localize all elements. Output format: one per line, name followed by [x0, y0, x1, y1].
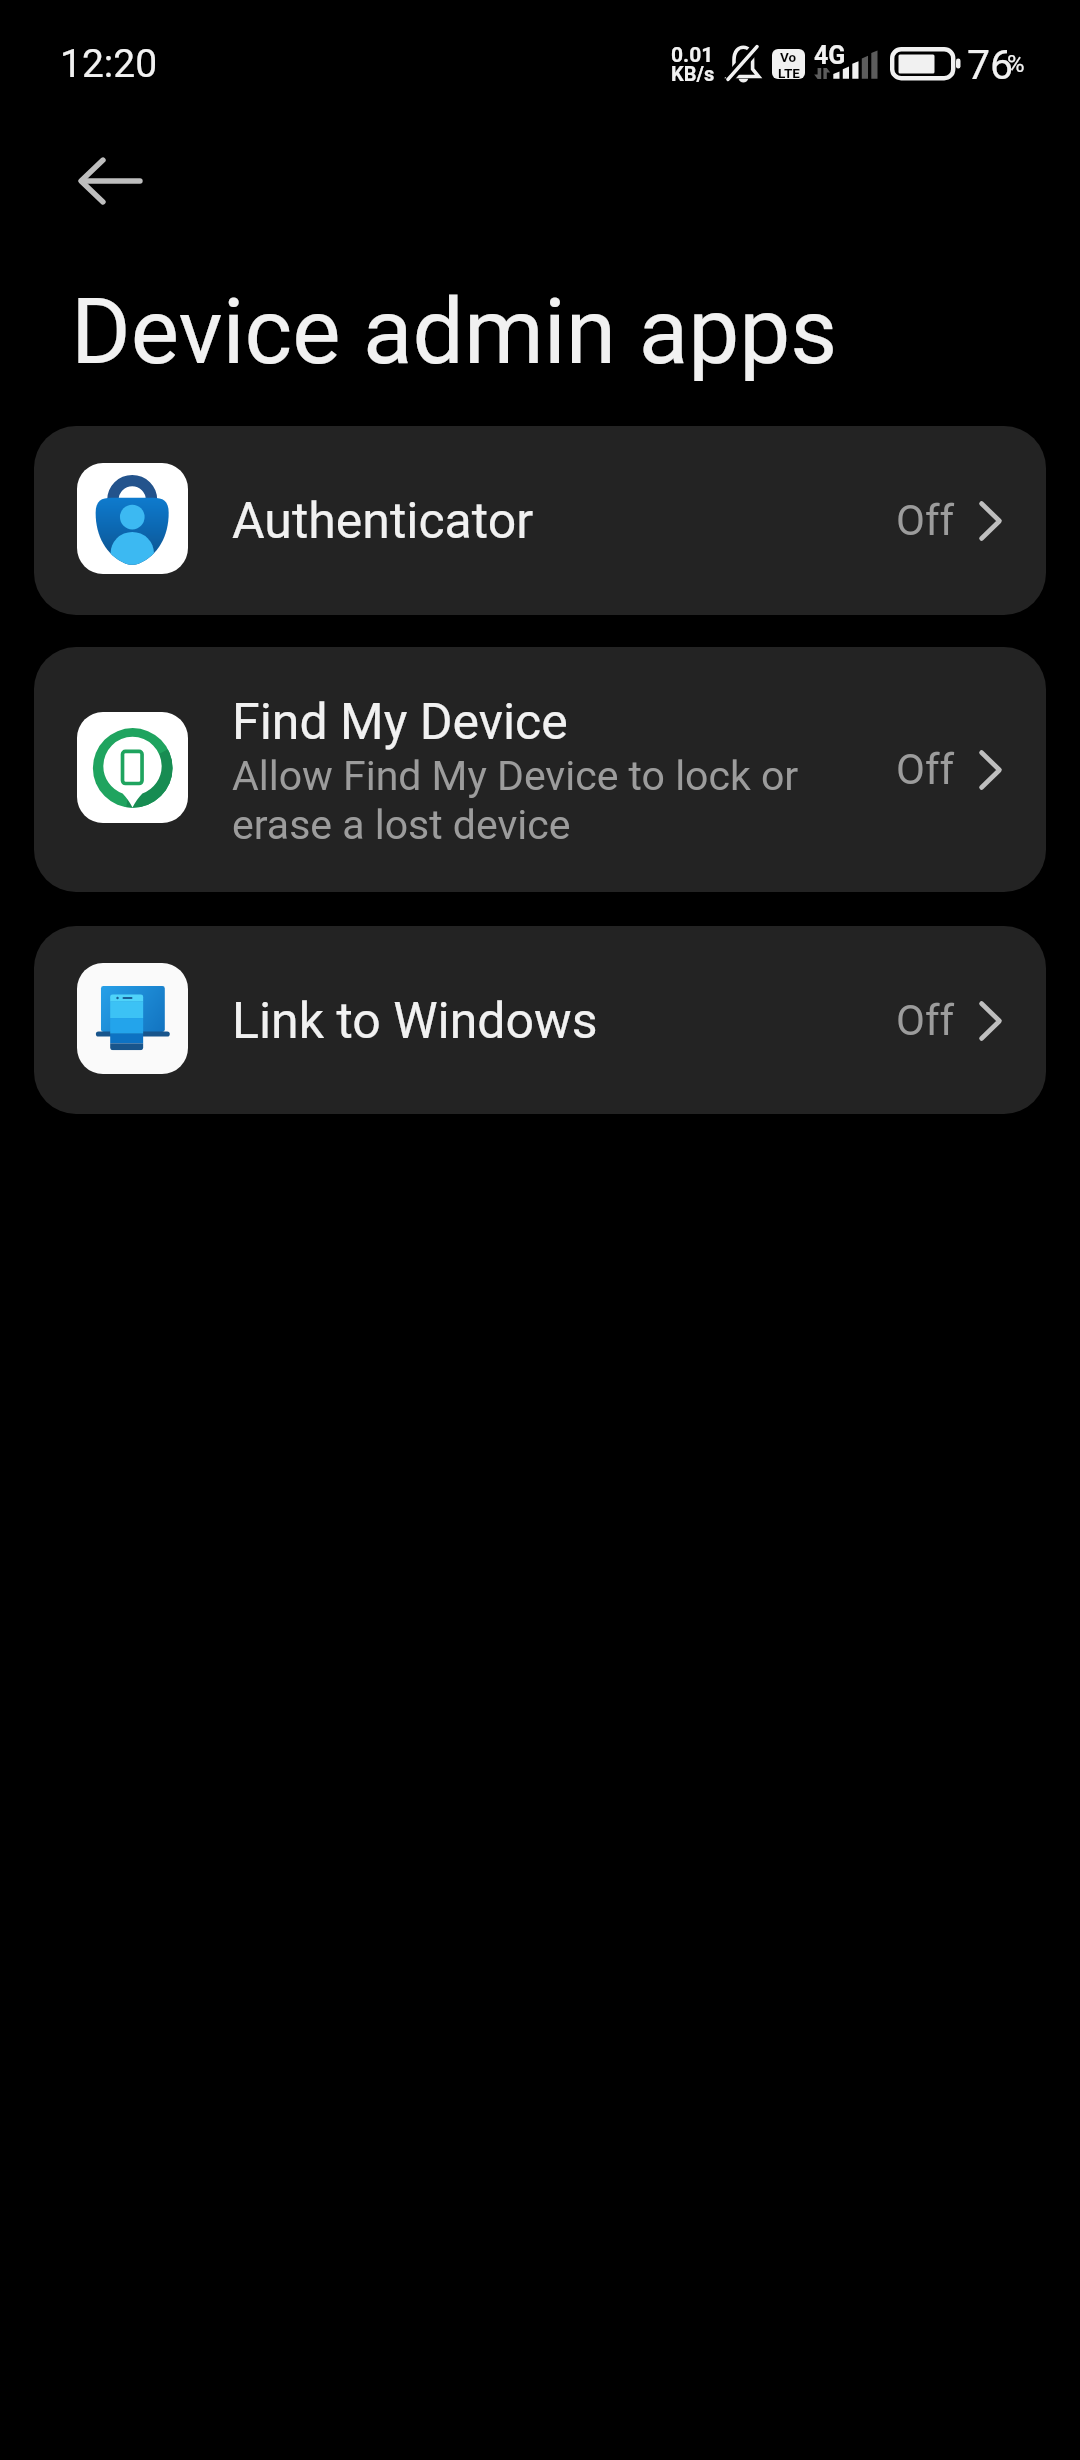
staticText: 4G	[814, 41, 846, 70]
button[interactable]: Back	[60, 141, 140, 221]
staticText: Find My Device	[232, 693, 568, 752]
staticText: 12:20	[60, 41, 158, 87]
staticText: Vo	[780, 49, 797, 65]
staticText: Allow Find My Device to lock or erase a …	[232, 752, 832, 849]
staticText: %	[1007, 50, 1025, 78]
staticText: Authenticator	[232, 492, 534, 551]
button[interactable]: Link to Windows	[34, 926, 1046, 1114]
staticText: Off	[896, 745, 955, 794]
staticText: KB/s	[671, 62, 715, 85]
button[interactable]: Find My Device	[34, 647, 1046, 892]
staticText: Off	[896, 996, 955, 1045]
staticText: Device admin apps	[71, 279, 838, 386]
staticText: LTE	[778, 65, 800, 79]
staticText: 76	[967, 41, 1014, 89]
staticText: 0.01	[671, 43, 714, 68]
staticText: Off	[896, 496, 955, 545]
button[interactable]: Authenticator	[34, 426, 1046, 615]
staticText: Link to Windows	[232, 992, 598, 1051]
